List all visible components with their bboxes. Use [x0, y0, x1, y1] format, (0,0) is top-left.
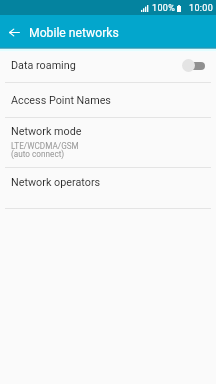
staticText: 100%	[152, 3, 176, 14]
staticText: LTE/WCDMA/GSM (auto connect)	[11, 141, 79, 159]
button[interactable]: Data roaming	[0, 47, 216, 82]
staticText: Access Point Names	[11, 94, 111, 107]
button[interactable]: Network operators	[0, 168, 216, 208]
staticText: Network operators	[11, 176, 101, 189]
staticText: Mobile networks	[29, 26, 119, 40]
button[interactable]: Navigate up	[0, 15, 29, 47]
button[interactable]: Access Point Names	[0, 83, 216, 117]
button[interactable]: Network mode	[0, 118, 216, 167]
staticText: Data roaming	[11, 59, 76, 72]
staticText: 10:00	[189, 3, 214, 14]
button[interactable]: Data roaming toggle	[182, 59, 205, 72]
staticText: Network mode	[11, 125, 82, 138]
